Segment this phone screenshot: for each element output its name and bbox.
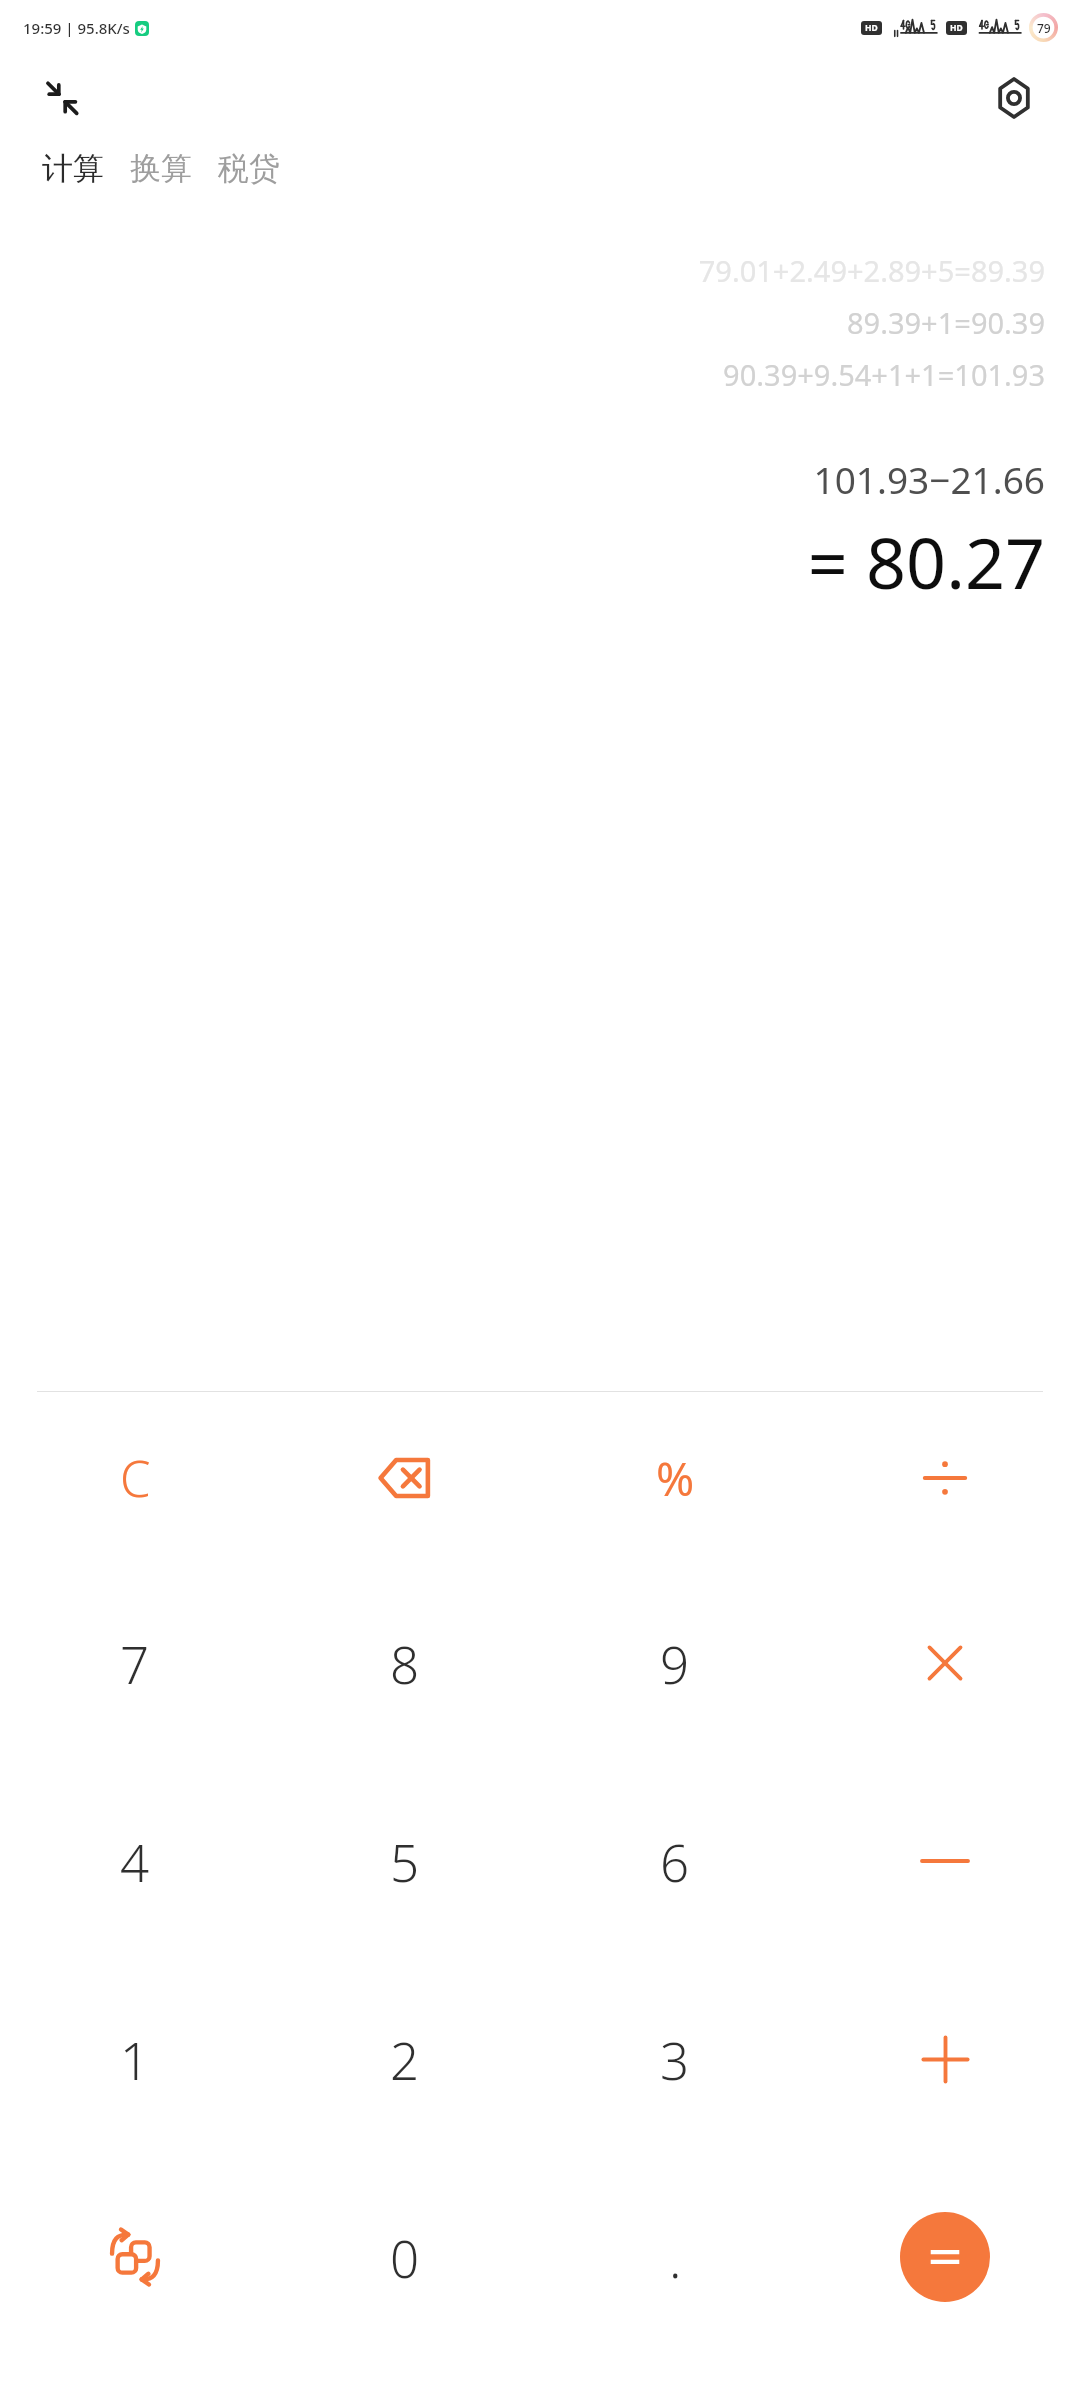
staticText: C (120, 1445, 151, 1512)
button[interactable]: 换算 (126, 141, 196, 196)
staticText: 4 (120, 1827, 150, 1896)
button[interactable]: 8 (270, 1564, 540, 1762)
staticText: 换算 (130, 149, 192, 188)
button[interactable]: 3 (540, 1960, 810, 2158)
button[interactable]: Percent (540, 1392, 810, 1564)
button[interactable]: 0 (270, 2158, 540, 2356)
staticText: HD (865, 22, 878, 34)
button[interactable]: . (540, 2158, 810, 2356)
button[interactable]: 税贷 (214, 141, 284, 196)
button[interactable]: 5 (270, 1762, 540, 1960)
button[interactable]: Collapse (34, 70, 90, 126)
button[interactable]: Convert (0, 2158, 270, 2356)
button[interactable]: Backspace (270, 1392, 540, 1564)
staticText: 9 (660, 1629, 690, 1698)
staticText: . (669, 2223, 682, 2292)
button[interactable]: Plus (810, 1960, 1080, 2158)
staticText: 7 (120, 1629, 150, 1698)
staticText: 90.39+9.54+1+1=101.93 (723, 355, 1045, 394)
staticText: HD (950, 22, 963, 34)
staticText: 3 (660, 2025, 690, 2094)
staticText: 79.01+2.49+2.89+5=89.39 (698, 251, 1045, 290)
staticText: 79 (1037, 20, 1051, 36)
button[interactable]: 2 (270, 1960, 540, 2158)
staticText: 2 (390, 2025, 420, 2094)
button[interactable]: Equals (900, 2212, 990, 2302)
button[interactable]: Divide (810, 1392, 1080, 1564)
button[interactable]: 4 (0, 1762, 270, 1960)
staticText: 税贷 (218, 149, 280, 188)
staticText: 1 (120, 2025, 150, 2094)
button[interactable]: 6 (540, 1762, 810, 1960)
staticText: 计算 (42, 149, 104, 188)
button[interactable]: 7 (0, 1564, 270, 1762)
staticText: 0 (390, 2223, 420, 2292)
button[interactable]: Multiply (810, 1564, 1080, 1762)
staticText: 89.39+1=90.39 (846, 303, 1045, 342)
button[interactable]: Settings (984, 68, 1044, 128)
button[interactable]: Clear (0, 1392, 270, 1564)
button[interactable]: 1 (0, 1960, 270, 2158)
button[interactable]: 计算 (38, 141, 108, 196)
staticText: % (656, 1447, 695, 1510)
staticText: = 80.27 (807, 514, 1045, 609)
button[interactable]: Minus (810, 1762, 1080, 1960)
staticText: 8 (390, 1629, 420, 1698)
button[interactable]: 9 (540, 1564, 810, 1762)
staticText: 6 (660, 1827, 690, 1896)
staticText: 101.93−21.66 (813, 454, 1045, 504)
staticText: 19:59 | 95.8K/s (23, 18, 130, 38)
staticText: 5 (390, 1827, 420, 1896)
